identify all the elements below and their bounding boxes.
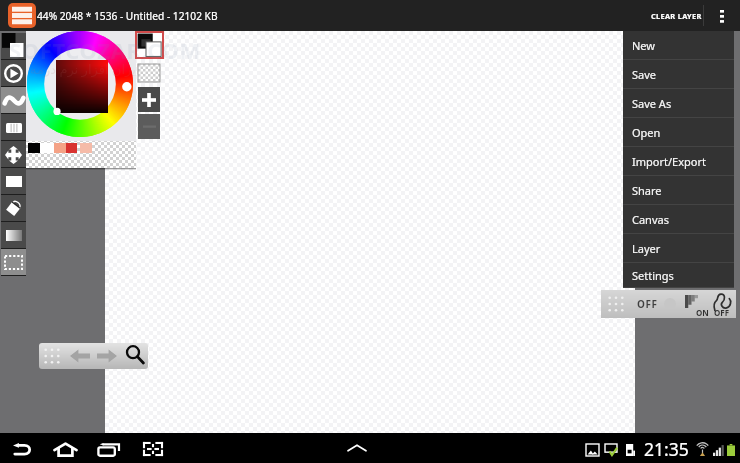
staticText: ایران افزار نرم درمه xyxy=(30,60,140,78)
button[interactable]: Color wheel xyxy=(27,31,133,137)
staticText: CLEAR LAYER xyxy=(651,11,702,21)
button[interactable]: Tool xyxy=(1,195,26,222)
button[interactable]: Opacity xyxy=(657,290,683,318)
staticText: Layer xyxy=(632,241,661,256)
button[interactable]: Tool xyxy=(1,141,26,168)
button[interactable]: Layer 2 xyxy=(138,64,160,82)
button[interactable]: App icon xyxy=(8,3,36,28)
button[interactable]: Recents xyxy=(92,433,125,463)
button[interactable]: Settings xyxy=(623,263,734,288)
button[interactable]: Back xyxy=(7,433,37,463)
button[interactable]: Tool xyxy=(1,222,26,249)
button[interactable]: Hide navigation bar xyxy=(340,433,374,463)
button[interactable]: Save xyxy=(623,60,734,89)
button[interactable]: Import/Export xyxy=(623,147,734,176)
staticText: OFF xyxy=(714,307,730,318)
staticText: Save As xyxy=(632,96,672,111)
button[interactable]: More options xyxy=(704,0,740,31)
staticText: ON xyxy=(696,307,709,318)
button[interactable]: Save As xyxy=(623,89,734,118)
button[interactable]: Tool xyxy=(1,114,26,141)
staticText: 44% 2048 * 1536 - Untitled - 12102 KB xyxy=(37,9,218,23)
button[interactable]: Tool xyxy=(1,168,26,195)
staticText: Settings xyxy=(632,268,674,283)
button[interactable]: Canvas xyxy=(623,205,734,234)
button[interactable]: Redo xyxy=(94,343,120,369)
button[interactable]: OFF xyxy=(629,290,665,318)
staticText: New xyxy=(632,38,655,53)
button[interactable]: Share xyxy=(623,176,734,205)
button[interactable]: Antialias ON xyxy=(683,290,711,318)
button[interactable]: Tool xyxy=(1,33,26,60)
button[interactable]: CLEAR LAYER xyxy=(641,0,711,31)
button[interactable]: Tool xyxy=(1,249,26,276)
staticText: Import/Export xyxy=(632,154,706,169)
button[interactable]: Home xyxy=(48,433,83,463)
staticText: Share xyxy=(632,183,662,198)
staticText: Open xyxy=(632,125,661,140)
button[interactable]: Layer xyxy=(623,234,734,263)
button[interactable]: Screenshot xyxy=(137,433,169,463)
staticText: OFF xyxy=(637,297,658,311)
button[interactable]: Tool xyxy=(1,87,26,114)
button[interactable]: New xyxy=(623,31,734,60)
button[interactable]: Remove layer xyxy=(138,114,160,139)
staticText: 21:35 xyxy=(644,437,689,461)
button[interactable]: Open xyxy=(623,118,734,147)
button[interactable]: Stabilizer OFF xyxy=(709,290,736,318)
button[interactable]: Tool xyxy=(1,60,26,87)
button[interactable]: Add layer xyxy=(138,87,160,112)
staticText: Canvas xyxy=(632,212,669,227)
button[interactable]: Layer 1 xyxy=(136,32,163,58)
staticText: Save xyxy=(632,67,657,82)
staticText: SOFTCOZAR.COM xyxy=(9,35,201,65)
button[interactable]: Undo xyxy=(67,343,93,369)
button[interactable]: View xyxy=(122,343,148,369)
